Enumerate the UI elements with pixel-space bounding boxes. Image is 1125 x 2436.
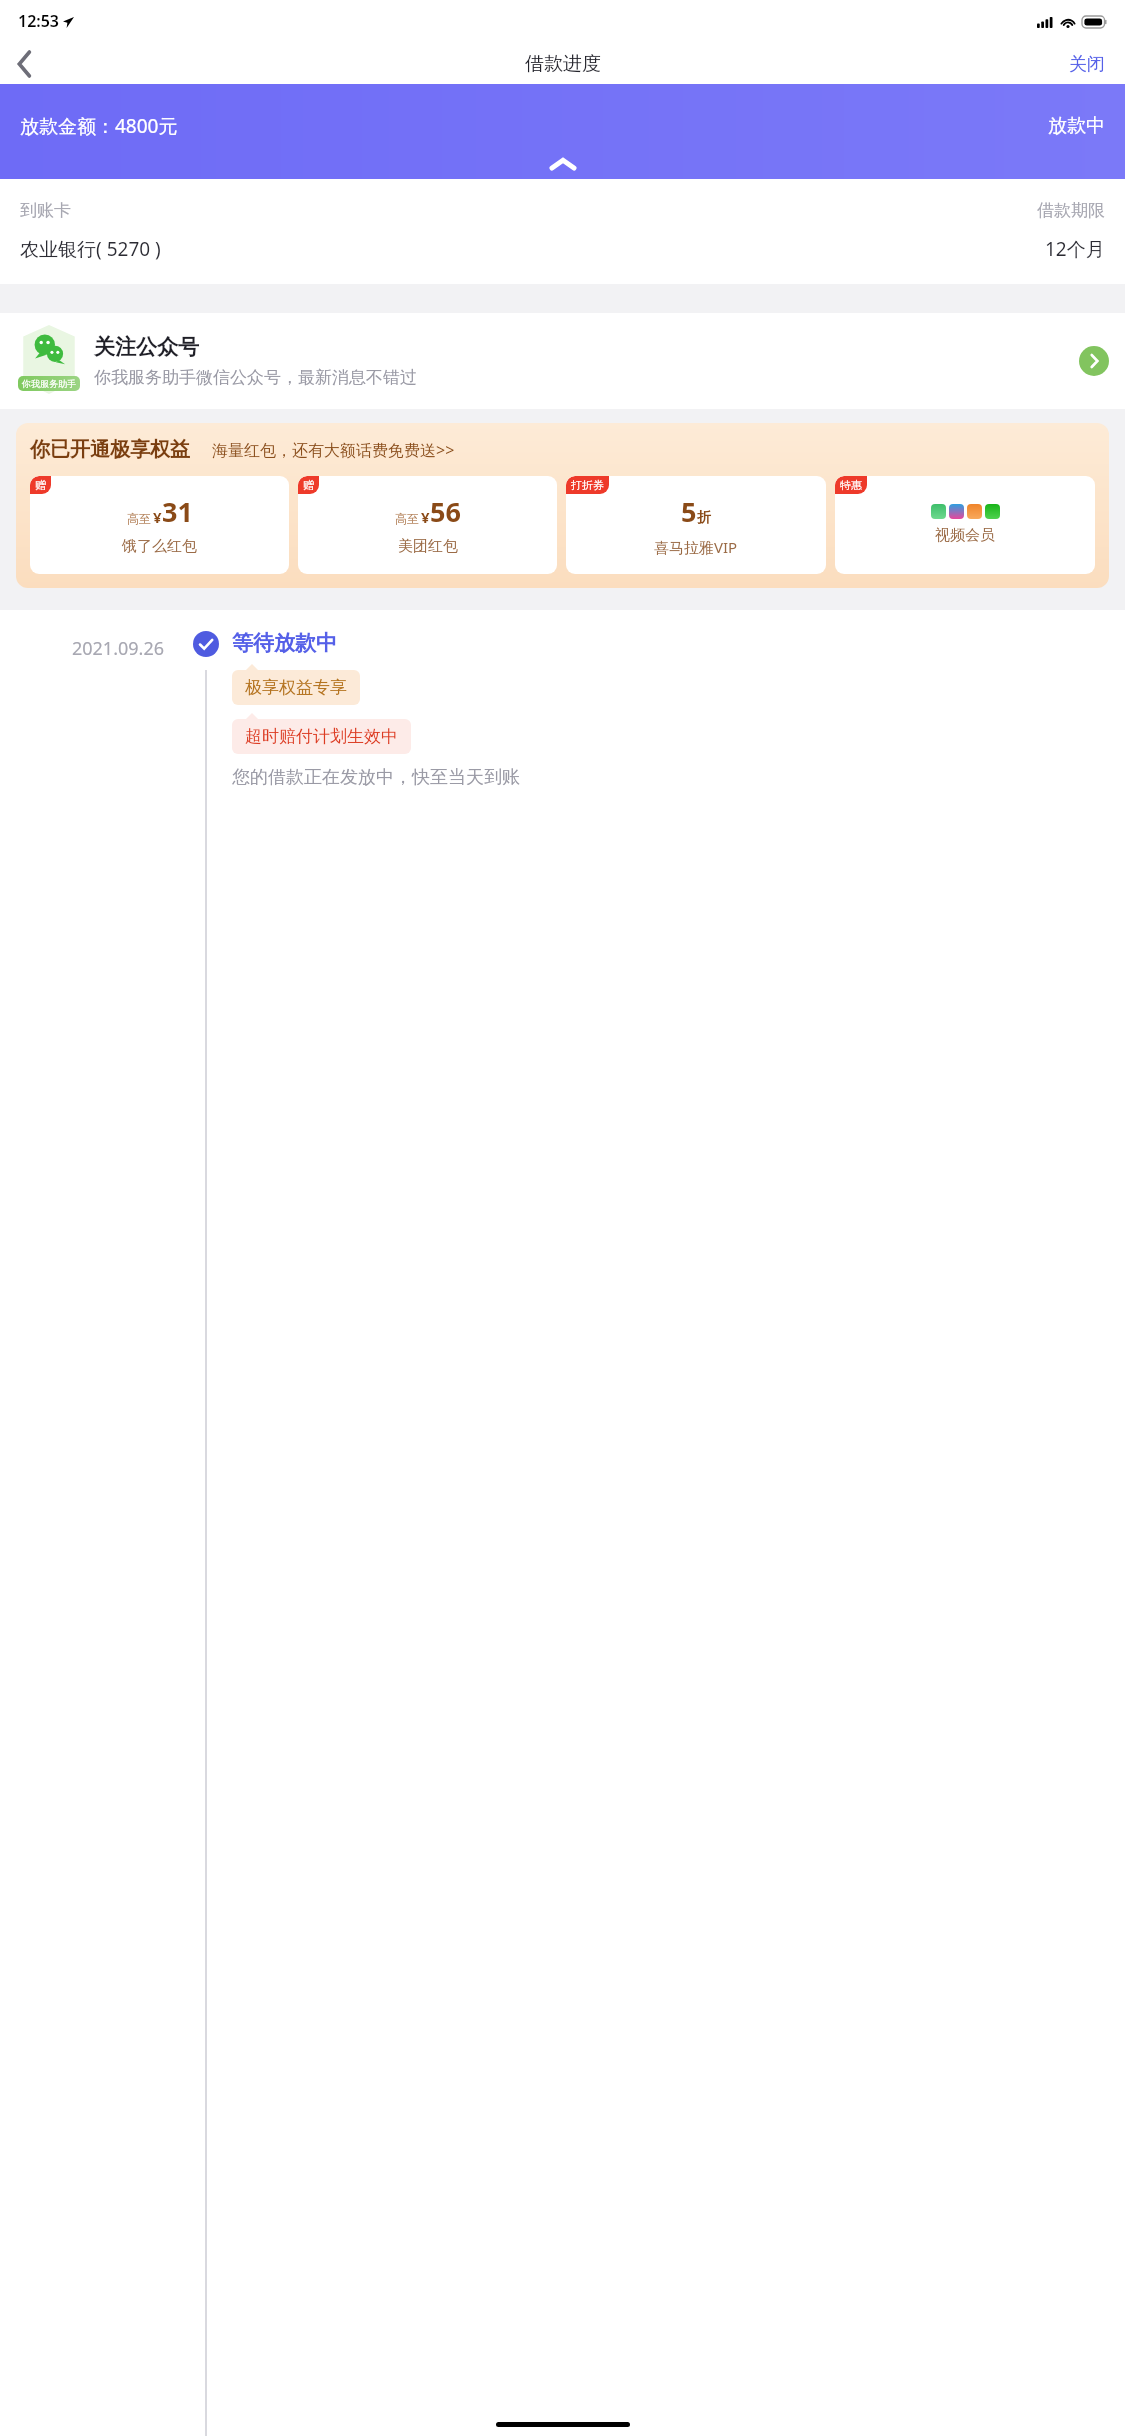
staticText: 5 <box>681 493 697 530</box>
button[interactable]: Back <box>0 44 48 84</box>
staticText: 喜马拉雅VIP <box>654 537 738 557</box>
staticText: ¥ <box>421 507 430 527</box>
staticText: 借款期限 <box>1037 200 1105 221</box>
staticText: 12:53 <box>18 10 60 32</box>
button[interactable]: 放款金额：4800元 <box>0 84 1125 179</box>
staticText: 视频会员 <box>935 526 995 545</box>
button[interactable]: 你已开通极享权益 <box>16 423 1109 588</box>
staticText: 美团红包 <box>398 537 458 556</box>
staticText: 超时赔付计划生效中 <box>245 726 398 747</box>
staticText: 关闭 <box>1069 53 1105 76</box>
button[interactable]: 高至 <box>298 476 557 574</box>
staticText: 赠 <box>303 478 314 492</box>
button[interactable]: 2021.09.26 <box>0 626 1125 2436</box>
staticText: 你已开通极享权益 <box>30 437 190 462</box>
button[interactable]: 高至 <box>30 476 289 574</box>
staticText: 极享权益专享 <box>245 677 347 698</box>
staticText: 高至 <box>395 511 419 526</box>
staticText: 特惠 <box>840 478 862 492</box>
staticText: 你我服务助手 <box>22 378 76 389</box>
staticText: 等待放款中 <box>232 630 337 656</box>
staticText: 饿了么红包 <box>122 537 197 556</box>
staticText: 56 <box>430 493 461 530</box>
button[interactable]: Go <box>1079 346 1109 376</box>
button[interactable]: 5 <box>566 476 826 574</box>
staticText: 2021.09.26 <box>0 636 164 661</box>
staticText: 打折券 <box>571 478 604 492</box>
button[interactable]: 视频会员 <box>835 476 1095 574</box>
staticText: 借款进度 <box>525 52 601 76</box>
staticText: 31 <box>162 493 193 530</box>
button[interactable]: 关闭 <box>1049 45 1125 84</box>
staticText: 到账卡 <box>20 200 71 221</box>
staticText: 农业银行( 5270 ) <box>20 236 161 262</box>
staticText: 放款中 <box>1048 114 1105 138</box>
staticText: 放款金额：4800元 <box>20 113 178 139</box>
staticText: 12个月 <box>1045 236 1105 262</box>
button[interactable]: 你我服务助手 <box>0 313 1125 409</box>
staticText: 折 <box>697 509 711 527</box>
staticText: 你我服务助手微信公众号，最新消息不错过 <box>94 367 417 388</box>
staticText: 高至 <box>127 511 151 526</box>
staticText: 关注公众号 <box>94 334 199 360</box>
staticText: ¥ <box>153 507 162 527</box>
staticText: 赠 <box>35 478 46 492</box>
staticText: 您的借款正在发放中，快至当天到账 <box>232 766 520 789</box>
staticText: 海量红包，还有大额话费免费送>> <box>212 439 455 461</box>
